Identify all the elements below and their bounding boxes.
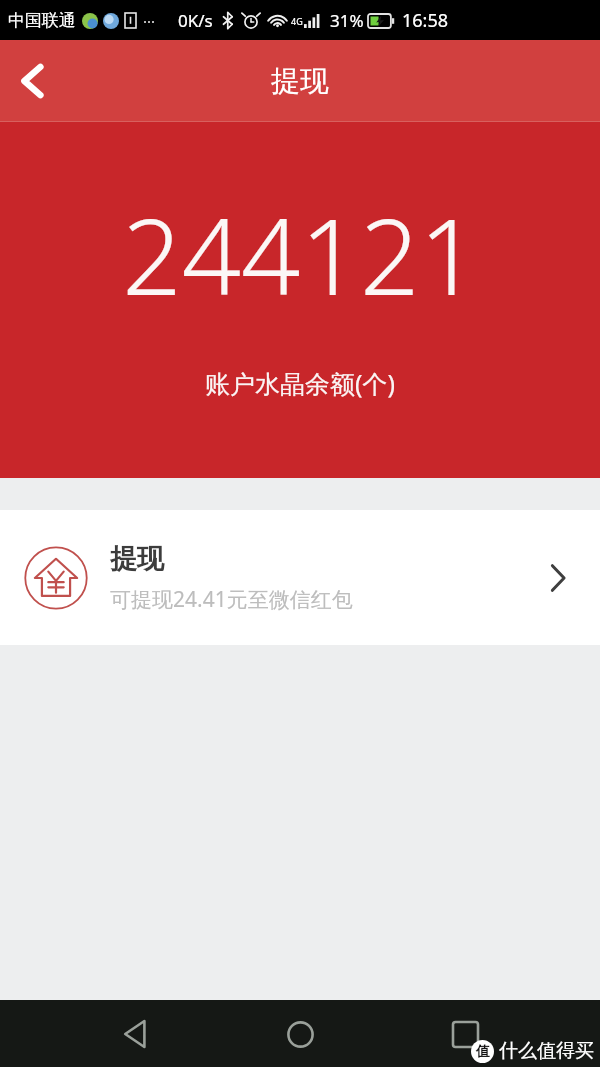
staticText: 0K/s xyxy=(178,9,213,32)
staticText: 4G xyxy=(291,15,303,27)
staticText: 31% xyxy=(330,9,364,32)
staticText: 账户水晶余额(个) xyxy=(205,366,396,400)
staticText: 值 xyxy=(476,1043,490,1061)
button[interactable]: Home xyxy=(271,1005,329,1063)
staticText: 中国联通 xyxy=(8,10,76,31)
staticText: 提现 xyxy=(110,542,164,576)
button[interactable]: Recent apps xyxy=(436,1005,494,1063)
staticText: 提现 xyxy=(271,63,329,100)
staticText: 16:58 xyxy=(402,8,449,33)
staticText: 什么值得买 xyxy=(499,1039,594,1063)
button[interactable]: Back xyxy=(6,55,58,107)
staticText: 244121 xyxy=(122,184,479,326)
staticText: 可提现24.41元至微信红包 xyxy=(110,585,353,614)
button[interactable]: 提现 xyxy=(0,510,600,645)
staticText: ··· xyxy=(143,11,156,31)
button[interactable]: Back xyxy=(107,1005,165,1063)
